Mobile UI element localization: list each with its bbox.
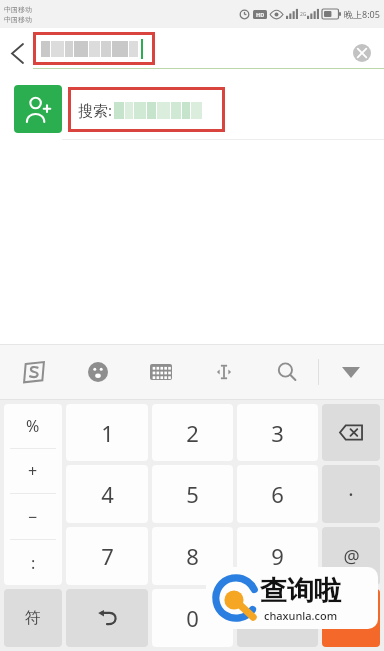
staticText: 中国移动 xyxy=(4,15,32,24)
button[interactable]: 5 xyxy=(152,465,233,523)
staticText: 2G xyxy=(300,11,307,18)
button[interactable]: · xyxy=(322,465,380,523)
staticText: 9 xyxy=(271,541,284,571)
button[interactable]: Backspace xyxy=(322,404,380,461)
button[interactable]: Emoji xyxy=(66,344,129,400)
button[interactable]: 8 xyxy=(152,527,233,585)
staticText: 6 xyxy=(271,479,284,509)
button[interactable]: % xyxy=(4,404,62,448)
button[interactable]: Search xyxy=(255,344,318,400)
staticText: chaxunla.com xyxy=(264,608,338,623)
button[interactable]: Sogou input xyxy=(2,344,66,400)
staticText: 中国移动 xyxy=(4,5,32,14)
button[interactable]: + xyxy=(4,449,62,493)
staticText: : xyxy=(31,552,36,574)
staticText: 3 xyxy=(271,418,284,448)
staticText: 查询啦 xyxy=(260,574,341,608)
staticText: 晚上8:05 xyxy=(344,8,380,20)
button[interactable]: Undo xyxy=(66,589,148,647)
button[interactable]: 3 xyxy=(237,404,318,461)
button[interactable]: 7 xyxy=(66,527,148,585)
button[interactable]: @ xyxy=(322,527,380,585)
button[interactable]: Hide keyboard xyxy=(319,344,382,400)
staticText: + xyxy=(28,460,38,482)
button[interactable] xyxy=(237,589,318,647)
button[interactable]: Clear xyxy=(348,39,376,67)
staticText: 2 xyxy=(186,418,199,448)
staticText: · xyxy=(348,481,354,508)
button[interactable]: − xyxy=(4,494,62,539)
staticText: 8 xyxy=(186,541,199,571)
button[interactable]: 0 xyxy=(152,589,233,647)
button[interactable]: Back xyxy=(0,36,34,70)
button[interactable]: 符 xyxy=(4,589,62,647)
staticText: 4 xyxy=(101,479,114,509)
staticText: HD xyxy=(256,11,265,18)
button[interactable]: : xyxy=(4,540,62,585)
button[interactable]: 1 xyxy=(66,404,148,461)
button[interactable]: 9 xyxy=(237,527,318,585)
staticText: 符 xyxy=(25,608,41,628)
staticText: 7 xyxy=(101,541,114,571)
button[interactable]: Search xyxy=(322,589,380,647)
staticText: @ xyxy=(343,544,360,569)
staticText: % xyxy=(26,415,40,437)
button[interactable]: 4 xyxy=(66,465,148,523)
staticText: 0 xyxy=(186,603,199,633)
staticText: 1 xyxy=(101,418,114,448)
staticText: 5 xyxy=(186,479,199,509)
staticText: − xyxy=(28,506,38,528)
button[interactable]: 搜索: xyxy=(0,78,384,140)
button[interactable]: Move cursor xyxy=(192,344,255,400)
button[interactable]: Keyboard layout xyxy=(129,344,192,400)
staticText: 搜索: xyxy=(78,100,113,120)
button[interactable]: 2 xyxy=(152,404,233,461)
button[interactable]: 6 xyxy=(237,465,318,523)
